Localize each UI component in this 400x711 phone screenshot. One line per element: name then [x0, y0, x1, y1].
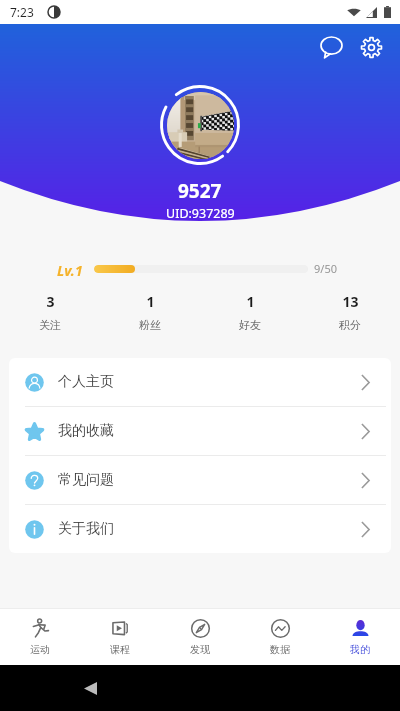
staticText: 13	[342, 292, 359, 311]
staticText: 运动	[30, 643, 50, 656]
staticText: 1	[146, 292, 155, 311]
button[interactable]: Messages	[314, 30, 348, 64]
staticText: 9527	[178, 178, 222, 204]
staticText: 好友	[239, 318, 261, 330]
button[interactable]: Settings	[354, 30, 388, 64]
staticText: 7:23	[10, 4, 34, 20]
staticText: 积分	[339, 318, 361, 330]
staticText: 粉丝	[139, 318, 161, 330]
staticText: 我的收藏	[58, 422, 114, 440]
staticText: UID:937289	[166, 205, 235, 222]
staticText: Lv.1	[57, 261, 83, 276]
staticText: 常见问题	[58, 471, 114, 489]
staticText: 9/50	[314, 261, 337, 276]
button[interactable]: 数据	[240, 609, 320, 665]
button[interactable]: Profile photo	[167, 92, 234, 159]
button[interactable]: 我的	[320, 609, 400, 665]
staticText: 3	[46, 292, 55, 311]
button[interactable]: 常见问题	[9, 456, 391, 504]
staticText: 我的	[350, 643, 370, 656]
button[interactable]: 关于我们	[9, 505, 391, 553]
button[interactable]: 13	[300, 292, 400, 330]
staticText: 课程	[110, 643, 130, 656]
button[interactable]: 个人主页	[9, 358, 391, 406]
button[interactable]: 发现	[160, 609, 240, 665]
staticText: 关注	[39, 318, 61, 330]
staticText: 关于我们	[58, 520, 114, 538]
button[interactable]: 我的收藏	[9, 407, 391, 455]
button[interactable]: 运动	[0, 609, 80, 665]
button[interactable]: 1	[100, 292, 200, 330]
staticText: 发现	[190, 643, 210, 656]
staticText: 个人主页	[58, 373, 114, 391]
button[interactable]: 1	[200, 292, 300, 330]
button[interactable]: 3	[0, 292, 100, 330]
button[interactable]: 课程	[80, 609, 160, 665]
staticText: 数据	[270, 643, 290, 656]
staticText: 1	[246, 292, 255, 311]
